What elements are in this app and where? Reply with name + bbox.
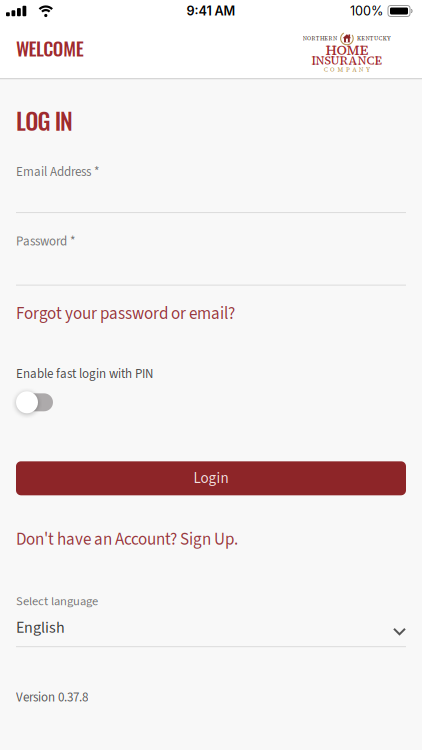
button[interactable]: Enable fast login with PIN [16, 390, 54, 414]
staticText: 100% [350, 3, 383, 19]
staticText: Select language [16, 592, 98, 610]
staticText: HOME [325, 41, 368, 59]
staticText: Don't have an Account? Sign Up. [16, 527, 238, 551]
staticText: 9:41 AM [186, 3, 235, 19]
staticText: NORTHERN [303, 35, 337, 42]
staticText: M [337, 65, 343, 73]
staticText: English [16, 616, 65, 639]
staticText: LOG IN [16, 103, 73, 138]
staticText: KENTUCKY [357, 35, 391, 42]
button[interactable]: English [16, 616, 406, 639]
staticText: Email Address * [16, 163, 99, 181]
staticText: WELCOME [16, 34, 84, 62]
button[interactable]: Forgot your password or email? [16, 302, 235, 326]
staticText: Version 0.37.8 [16, 688, 88, 707]
staticText: P [346, 65, 350, 73]
staticText: Login [193, 468, 228, 489]
staticText: O [330, 65, 335, 73]
staticText: C [324, 65, 328, 73]
button[interactable]: Login [16, 461, 406, 495]
staticText: INSURANCE [311, 53, 382, 68]
staticText: A [352, 65, 356, 73]
staticText: Y [366, 65, 370, 73]
button[interactable]: Don't have an Account? Sign Up. [16, 527, 238, 551]
staticText: Enable fast login with PIN [16, 365, 153, 383]
staticText: N [359, 65, 364, 73]
staticText: Forgot your password or email? [16, 302, 235, 326]
staticText: Password * [16, 232, 75, 251]
